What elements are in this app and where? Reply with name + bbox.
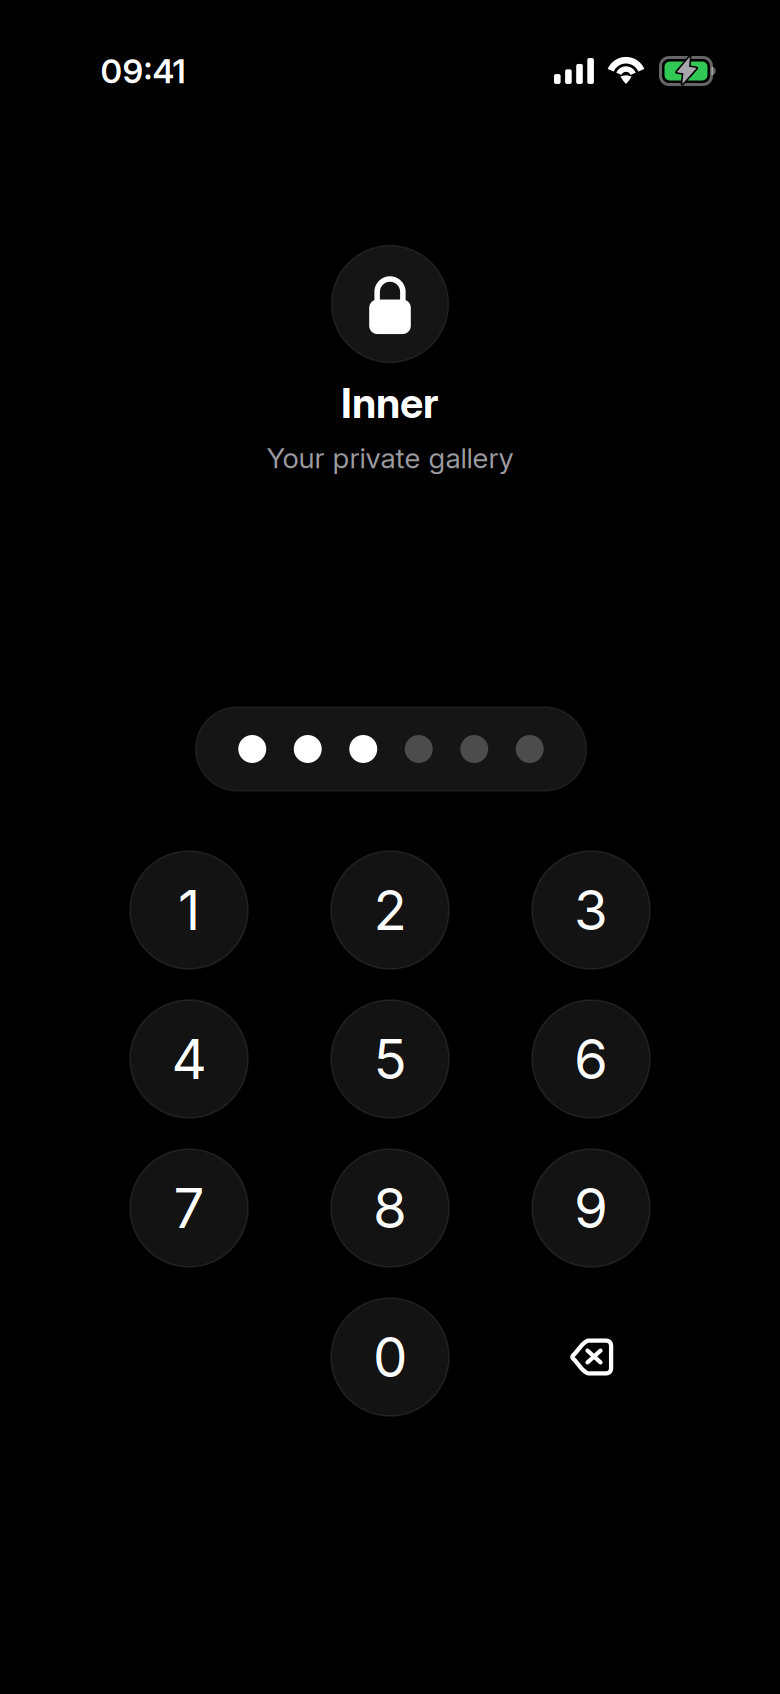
staticText: Inner bbox=[341, 378, 439, 428]
staticText: 9 bbox=[574, 1175, 608, 1241]
staticText: Your private gallery bbox=[266, 441, 513, 475]
button[interactable]: 4 bbox=[130, 1000, 248, 1118]
button[interactable]: 7 bbox=[130, 1149, 248, 1267]
button[interactable]: 5 bbox=[331, 1000, 449, 1118]
button[interactable]: 3 bbox=[532, 851, 650, 969]
staticText: 7 bbox=[173, 1175, 204, 1241]
button[interactable]: 1 bbox=[130, 851, 248, 969]
staticText: 2 bbox=[373, 877, 406, 943]
button[interactable]: 2 bbox=[331, 851, 449, 969]
button[interactable]: 6 bbox=[532, 1000, 650, 1118]
staticText: 3 bbox=[574, 877, 608, 943]
staticText: 0 bbox=[373, 1324, 407, 1390]
button[interactable]: 9 bbox=[532, 1149, 650, 1267]
button[interactable]: 8 bbox=[331, 1149, 449, 1267]
staticText: 6 bbox=[574, 1026, 608, 1092]
button[interactable]: Delete bbox=[532, 1298, 650, 1416]
staticText: 5 bbox=[373, 1026, 406, 1092]
staticText: 09:41 bbox=[100, 51, 185, 91]
staticText: 4 bbox=[171, 1026, 206, 1092]
button[interactable]: 0 bbox=[331, 1298, 449, 1416]
staticText: 1 bbox=[178, 877, 200, 943]
staticText: 8 bbox=[373, 1175, 407, 1241]
